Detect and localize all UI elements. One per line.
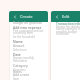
staticText: before saving to the	[56, 27, 80, 31]
staticText: Transaction info	[56, 22, 80, 26]
staticText: for March	[56, 32, 69, 36]
staticText: a monthly limit	[13, 31, 33, 35]
staticText: Date	[13, 52, 21, 57]
staticText: Save	[13, 77, 20, 80]
staticText: Amount	[13, 44, 25, 48]
staticText: Reminders	[13, 59, 28, 63]
staticText: Create	[20, 14, 33, 19]
staticText: for the household	[13, 35, 35, 39]
button[interactable]: Back	[55, 15, 59, 19]
staticText: Add new expense	[13, 25, 42, 30]
staticText: Add a note	[13, 73, 30, 77]
staticText: Edit	[62, 14, 70, 19]
staticText: monthly budget	[56, 30, 78, 34]
staticText: Budget for groceries	[13, 21, 43, 25]
staticText: Groceries	[13, 68, 26, 72]
staticText: Review the details	[56, 25, 80, 29]
button[interactable]: Back	[13, 15, 17, 19]
staticText: Category	[13, 63, 28, 68]
staticText: Repeat monthly	[13, 56, 34, 60]
staticText: Name	[13, 39, 23, 44]
staticText: Select one	[13, 48, 27, 52]
staticText: Notes	[13, 70, 22, 74]
staticText: Pick a category and set	[13, 29, 44, 33]
